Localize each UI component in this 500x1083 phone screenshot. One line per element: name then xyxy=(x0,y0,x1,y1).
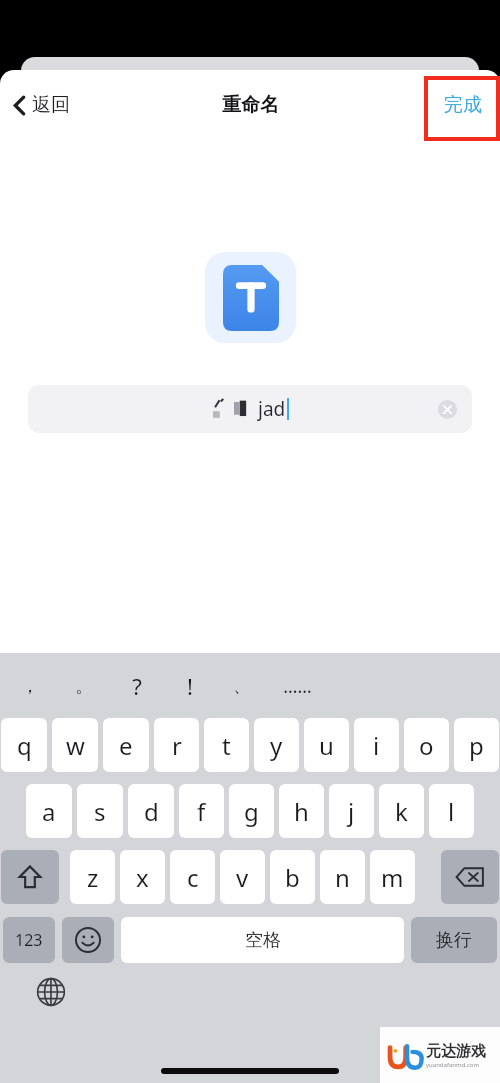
staticText: o xyxy=(419,729,434,762)
staticText: m xyxy=(381,861,404,894)
button[interactable]: 、 xyxy=(222,667,262,705)
staticText: z xyxy=(87,861,99,894)
button[interactable]: 换行 xyxy=(411,917,497,963)
staticText: w xyxy=(66,729,85,762)
staticText: r xyxy=(172,729,182,762)
staticText: d xyxy=(144,795,159,828)
button[interactable]: p xyxy=(454,718,499,772)
staticText: ? xyxy=(132,671,142,701)
button[interactable]: 返回 xyxy=(0,85,80,125)
button[interactable]: 123 xyxy=(3,917,55,963)
button[interactable]: …… xyxy=(277,667,317,705)
staticText: b xyxy=(285,861,300,894)
button[interactable]: h xyxy=(279,784,324,838)
button[interactable]: g xyxy=(229,784,274,838)
staticText: 重命名 xyxy=(222,93,279,117)
staticText: ! xyxy=(187,671,193,701)
button[interactable]: v xyxy=(220,850,265,904)
staticText: j xyxy=(348,795,355,828)
staticText: i xyxy=(373,729,380,762)
button[interactable]: Change keyboard language xyxy=(34,975,68,1009)
staticText: …… xyxy=(283,674,312,699)
button[interactable]: n xyxy=(320,850,365,904)
staticText: p xyxy=(469,729,484,762)
button[interactable]: f xyxy=(179,784,224,838)
button[interactable]: Clear text xyxy=(432,394,462,424)
staticText: ， xyxy=(21,675,39,698)
staticText: q xyxy=(17,729,32,762)
button[interactable]: r xyxy=(154,718,199,772)
staticText: v xyxy=(236,861,249,894)
button[interactable]: 完成 xyxy=(426,83,500,127)
staticText: yuandafanmd.com xyxy=(426,1061,480,1069)
staticText: 返回 xyxy=(32,93,70,117)
button[interactable]: jad xyxy=(28,385,472,433)
staticText: k xyxy=(395,795,408,828)
button[interactable]: q xyxy=(1,718,47,772)
staticText: t xyxy=(222,729,231,762)
staticText: 。 xyxy=(75,675,93,698)
button[interactable]: d xyxy=(128,784,174,838)
staticText: 换行 xyxy=(436,929,472,952)
staticText: 、 xyxy=(233,675,251,698)
staticText: 123 xyxy=(15,929,43,951)
staticText: g xyxy=(244,795,259,828)
staticText: s xyxy=(94,795,106,828)
button[interactable]: 。 xyxy=(64,667,104,705)
staticText: h xyxy=(294,795,309,828)
button[interactable]: s xyxy=(77,784,123,838)
staticText: 元达游戏 xyxy=(426,1042,486,1061)
button[interactable]: 空格 xyxy=(121,917,404,963)
staticText: 空格 xyxy=(245,929,281,952)
button[interactable]: j xyxy=(329,784,374,838)
button[interactable]: t xyxy=(204,718,249,772)
staticText: x xyxy=(136,861,149,894)
button[interactable]: k xyxy=(379,784,424,838)
staticText: e xyxy=(119,729,133,762)
staticText: y xyxy=(270,729,283,762)
staticText: l xyxy=(448,795,455,828)
button[interactable]: c xyxy=(170,850,215,904)
button[interactable]: ? xyxy=(117,667,157,705)
button[interactable]: i xyxy=(354,718,399,772)
button[interactable]: ! xyxy=(170,667,210,705)
button[interactable]: x xyxy=(120,850,165,904)
button[interactable]: b xyxy=(270,850,315,904)
button[interactable]: m xyxy=(370,850,415,904)
button[interactable]: w xyxy=(52,718,98,772)
button[interactable]: a xyxy=(26,784,72,838)
button[interactable]: Emoji xyxy=(62,917,114,963)
staticText: 完成 xyxy=(444,93,482,117)
button[interactable]: Shift xyxy=(1,850,59,904)
staticText: jad xyxy=(258,396,286,422)
staticText: u xyxy=(319,729,334,762)
button[interactable]: u xyxy=(304,718,349,772)
staticText: c xyxy=(187,861,199,894)
button[interactable]: ， xyxy=(10,667,50,705)
button[interactable]: Backspace xyxy=(441,850,499,904)
button[interactable]: y xyxy=(254,718,299,772)
staticText: a xyxy=(42,795,56,828)
button[interactable]: l xyxy=(429,784,474,838)
button[interactable]: o xyxy=(404,718,449,772)
staticText: n xyxy=(335,861,350,894)
button[interactable]: z xyxy=(70,850,115,904)
staticText: f xyxy=(197,795,206,828)
button[interactable]: e xyxy=(103,718,149,772)
